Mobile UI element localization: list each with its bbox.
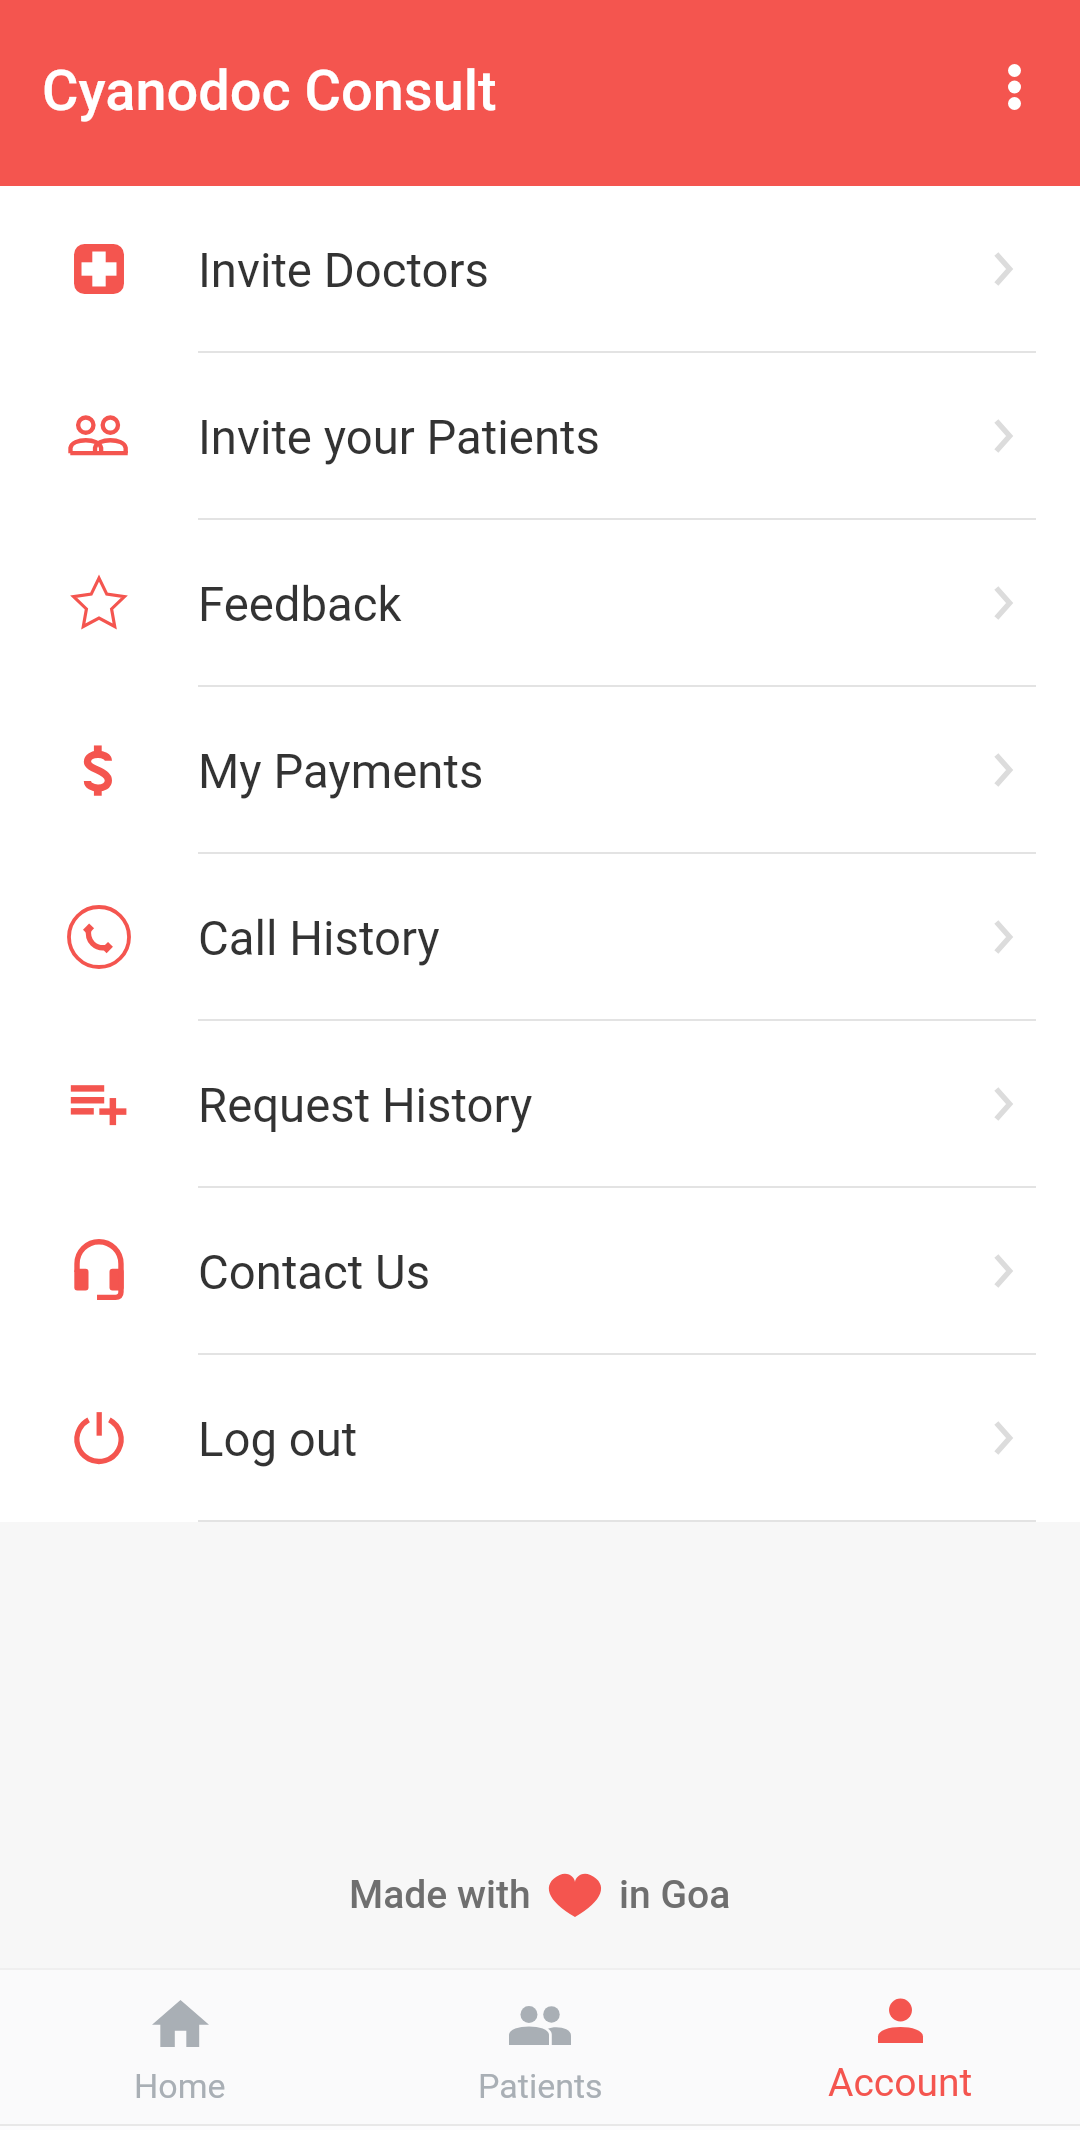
staticText: Feedback — [198, 577, 402, 632]
button[interactable]: Request History — [0, 1021, 1080, 1188]
button[interactable]: Feedback — [0, 520, 1080, 687]
staticText: Patients — [478, 2066, 603, 2106]
staticText: Cyanodoc Consult — [42, 58, 497, 123]
staticText: Home — [134, 2066, 226, 2106]
staticText: Invite your Patients — [198, 410, 600, 465]
staticText: Contact Us — [198, 1245, 431, 1300]
staticText: Invite Doctors — [198, 243, 489, 298]
button[interactable]: Home — [0, 1970, 360, 2124]
staticText: Log out — [198, 1412, 358, 1467]
staticText: Request History — [198, 1078, 533, 1133]
button[interactable]: Call History — [0, 854, 1080, 1021]
button[interactable]: Invite Doctors — [0, 186, 1080, 353]
button[interactable]: Contact Us — [0, 1188, 1080, 1355]
staticText: My Payments — [198, 744, 484, 799]
button[interactable]: Patients — [360, 1970, 720, 2124]
button[interactable]: More options — [948, 0, 1080, 186]
staticText: Made with — [349, 1872, 531, 1918]
button[interactable]: Invite your Patients — [0, 353, 1080, 520]
button[interactable]: Log out — [0, 1355, 1080, 1522]
staticText: in Goa — [619, 1872, 731, 1918]
button[interactable]: My Payments — [0, 687, 1080, 854]
staticText: Account — [828, 2060, 973, 2106]
button[interactable]: Account — [720, 1970, 1080, 2124]
staticText: Call History — [198, 911, 440, 966]
